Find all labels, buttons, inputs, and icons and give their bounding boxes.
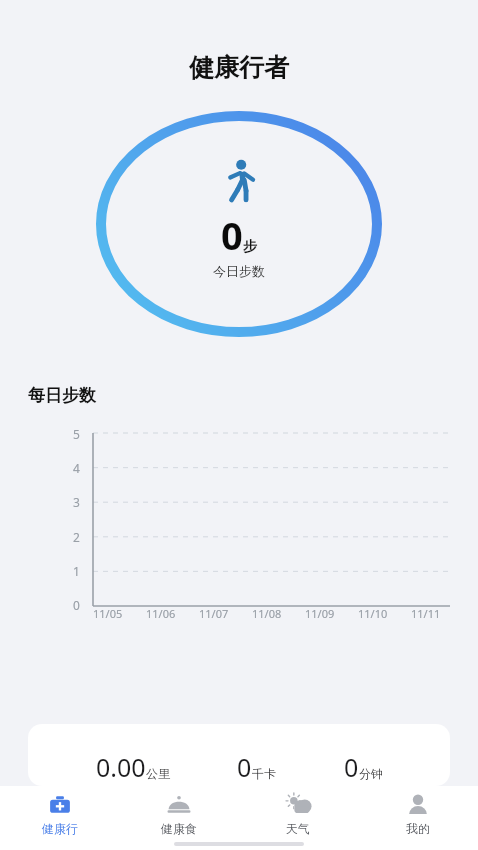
staticText: 健康行者 bbox=[189, 52, 289, 83]
button[interactable]: 健康行 bbox=[0, 786, 119, 850]
staticText: 0.00 bbox=[96, 750, 146, 784]
staticText: 今日步数 bbox=[213, 263, 265, 279]
staticText: 天气 bbox=[286, 821, 310, 836]
button[interactable]: 我的 bbox=[358, 786, 478, 850]
button[interactable]: 健康食 bbox=[119, 786, 238, 850]
staticText: 分钟 bbox=[359, 766, 383, 781]
staticText: 11/08 bbox=[252, 606, 305, 621]
staticText: 0 bbox=[344, 750, 359, 784]
staticText: 5 bbox=[73, 426, 80, 442]
staticText: 公里 bbox=[146, 766, 170, 781]
staticText: 健康食 bbox=[161, 821, 197, 836]
staticText: 健康行 bbox=[42, 821, 78, 836]
staticText: 0 bbox=[221, 209, 243, 261]
staticText: 11/11 bbox=[411, 606, 464, 621]
staticText: 11/07 bbox=[199, 606, 252, 621]
staticText: 11/09 bbox=[305, 606, 358, 621]
staticText: 1 bbox=[73, 563, 80, 579]
staticText: 11/06 bbox=[146, 606, 199, 621]
staticText: 2 bbox=[73, 529, 80, 545]
staticText: 我的 bbox=[406, 821, 430, 836]
staticText: 千卡 bbox=[252, 766, 276, 781]
staticText: 3 bbox=[73, 494, 80, 510]
staticText: 0 bbox=[237, 750, 252, 784]
staticText: 11/10 bbox=[358, 606, 411, 621]
staticText: 每日步数 bbox=[28, 385, 96, 406]
staticText: 11/05 bbox=[93, 606, 146, 621]
button[interactable]: 天气 bbox=[238, 786, 358, 850]
staticText: 0 bbox=[73, 597, 80, 613]
staticText: 步 bbox=[243, 238, 257, 256]
staticText: 4 bbox=[73, 460, 80, 476]
button[interactable]: 0.00 bbox=[28, 724, 450, 786]
